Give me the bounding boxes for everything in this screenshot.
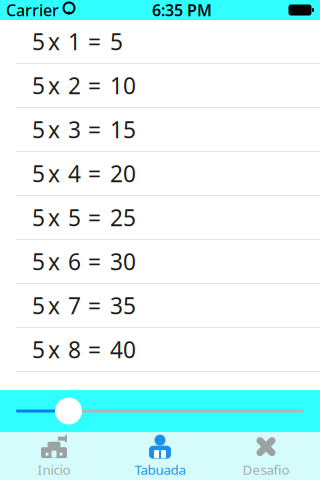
staticText: 1 xyxy=(68,26,81,56)
staticText: 15 xyxy=(110,114,136,144)
button[interactable]: Multiplier slider xyxy=(16,390,304,432)
staticText: Carrier xyxy=(6,0,59,21)
staticText: x xyxy=(48,26,60,56)
button[interactable]: 5 xyxy=(0,152,320,196)
staticText: 7 xyxy=(68,290,81,320)
staticText: = xyxy=(88,334,101,364)
staticText: 5 xyxy=(32,26,45,56)
staticText: 5 xyxy=(32,290,45,320)
button[interactable]: Inicio xyxy=(1,432,107,480)
staticText: Tabuada xyxy=(134,461,185,478)
staticText: 5 xyxy=(32,158,45,188)
staticText: 5 xyxy=(32,202,45,232)
button[interactable]: 5 xyxy=(0,284,320,328)
staticText: x xyxy=(48,290,60,320)
staticText: 35 xyxy=(110,290,136,320)
button[interactable]: Desafio xyxy=(213,432,319,480)
staticText: = xyxy=(88,158,101,188)
staticText: 30 xyxy=(110,246,136,276)
staticText: 2 xyxy=(68,70,81,100)
staticText: 8 xyxy=(68,334,81,364)
button[interactable]: 5 xyxy=(0,196,320,240)
staticText: 25 xyxy=(110,202,136,232)
staticText: 4 xyxy=(68,158,81,188)
staticText: = xyxy=(88,26,101,56)
staticText: x xyxy=(48,114,60,144)
staticText: 3 xyxy=(68,114,81,144)
button[interactable]: 5 xyxy=(0,20,320,64)
button[interactable]: 5 xyxy=(0,64,320,108)
staticText: x xyxy=(48,202,60,232)
staticText: 5 xyxy=(68,202,81,232)
staticText: 5 xyxy=(32,334,45,364)
staticText: Desafio xyxy=(242,461,289,478)
button[interactable]: 5 xyxy=(0,108,320,152)
staticText: 6 xyxy=(68,246,81,276)
staticText: x xyxy=(48,158,60,188)
staticText: Inicio xyxy=(37,461,70,478)
staticText: 10 xyxy=(110,70,136,100)
staticText: = xyxy=(88,114,101,144)
staticText: 5 xyxy=(32,114,45,144)
staticText: x xyxy=(48,246,60,276)
staticText: 5 xyxy=(110,26,123,56)
staticText: 6:35 PM xyxy=(152,0,212,21)
staticText: = xyxy=(88,70,101,100)
staticText: = xyxy=(88,202,101,232)
staticText: 20 xyxy=(110,158,136,188)
staticText: 40 xyxy=(110,334,136,364)
staticText: x xyxy=(48,334,60,364)
staticText: = xyxy=(88,290,101,320)
button[interactable]: 5 xyxy=(0,328,320,372)
button[interactable]: Tabuada xyxy=(107,432,213,480)
button[interactable]: 5 xyxy=(0,240,320,284)
staticText: x xyxy=(48,70,60,100)
staticText: 5 xyxy=(32,70,45,100)
staticText: = xyxy=(88,246,101,276)
staticText: 5 xyxy=(32,246,45,276)
